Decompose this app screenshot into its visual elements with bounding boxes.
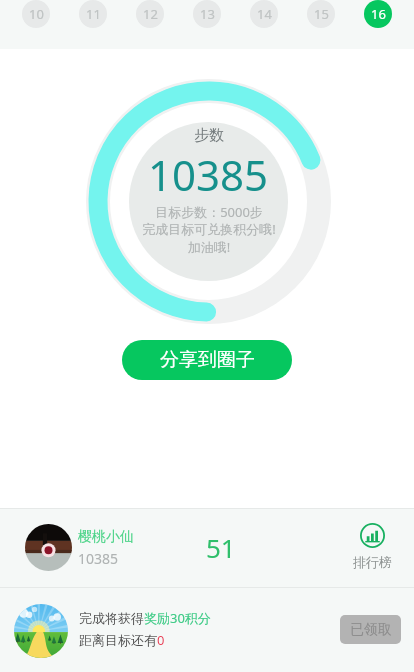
button[interactable]: 12 bbox=[136, 0, 164, 28]
button[interactable]: 10 bbox=[22, 0, 50, 28]
staticText: 16 bbox=[371, 5, 386, 23]
button[interactable]: 分享到圈子 bbox=[122, 340, 292, 380]
staticText: 樱桃小仙 bbox=[78, 528, 134, 546]
staticText: 10 bbox=[29, 5, 44, 23]
staticText: 14 bbox=[257, 5, 272, 23]
staticText: 10385 bbox=[148, 146, 269, 203]
staticText: 11 bbox=[86, 5, 101, 23]
staticText: 已领取 bbox=[350, 621, 392, 639]
button[interactable]: 15 bbox=[307, 0, 335, 28]
staticText: 完成将获得奖励30积分 bbox=[79, 609, 211, 627]
staticText: 目标步数：5000步 完成目标可兑换积分哦! 加油哦! bbox=[142, 203, 276, 256]
button[interactable]: 14 bbox=[250, 0, 278, 28]
staticText: 51 bbox=[206, 530, 236, 565]
button[interactable]: 11 bbox=[79, 0, 107, 28]
staticText: 分享到圈子 bbox=[160, 348, 255, 372]
staticText: 15 bbox=[314, 5, 329, 23]
staticText: 12 bbox=[143, 5, 158, 23]
staticText: 排行榜 bbox=[353, 554, 392, 570]
staticText: 距离目标还有0 bbox=[79, 631, 165, 649]
staticText: 13 bbox=[200, 5, 215, 23]
staticText: 10385 bbox=[78, 549, 119, 568]
staticText: 步数 bbox=[194, 126, 224, 145]
button[interactable]: 13 bbox=[193, 0, 221, 28]
button[interactable]: 16 bbox=[364, 0, 392, 28]
button[interactable]: 已领取 bbox=[340, 615, 401, 644]
button[interactable]: 樱桃小仙 bbox=[0, 509, 414, 587]
button[interactable]: 排行榜 bbox=[346, 523, 398, 570]
